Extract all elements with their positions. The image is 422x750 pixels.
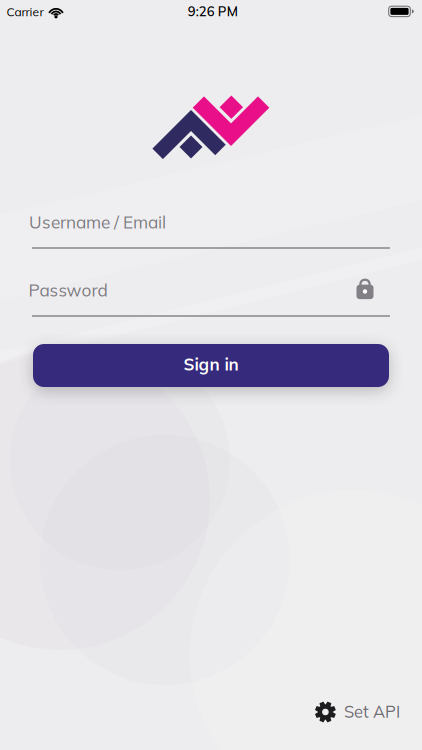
button[interactable]: Username / Email — [32, 196, 390, 252]
staticText: Set API — [344, 701, 400, 722]
button[interactable]: Set API — [307, 698, 407, 726]
staticText: Sign in — [183, 353, 238, 375]
button[interactable]: Sign in — [33, 344, 389, 387]
button[interactable]: Password — [32, 264, 390, 320]
staticText: Username / Email — [29, 211, 166, 233]
staticText: Password — [28, 279, 107, 301]
staticText: 9:26 PM — [188, 3, 238, 19]
staticText: Carrier — [6, 4, 43, 19]
